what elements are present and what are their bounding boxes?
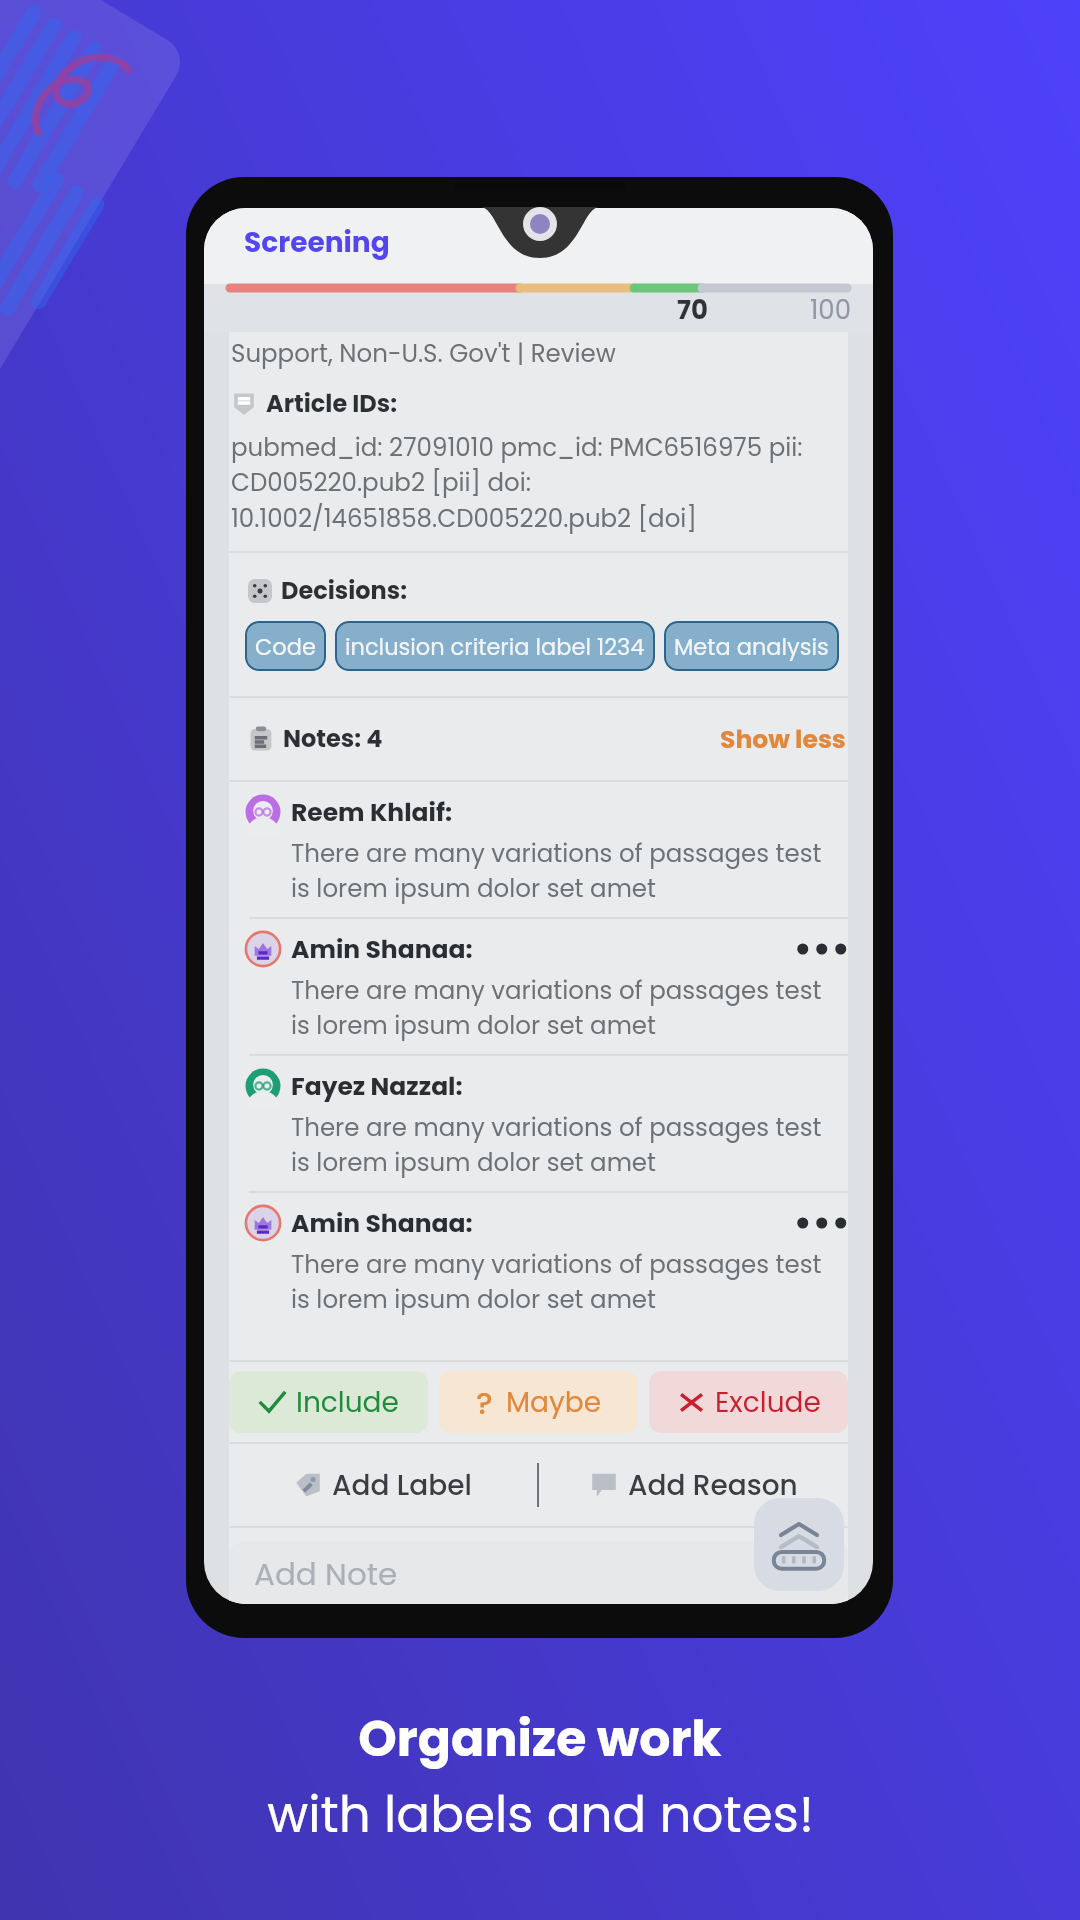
button[interactable]: More options	[796, 931, 848, 967]
staticText: Add Note	[254, 1552, 398, 1595]
staticText: There are many variations of passages te…	[291, 1110, 822, 1179]
button[interactable]: Meta analysis	[664, 621, 839, 671]
staticText: 70	[677, 292, 708, 328]
staticText: Add Label	[332, 1466, 472, 1505]
staticText: Include	[296, 1383, 399, 1422]
button[interactable]: Exclude	[649, 1371, 848, 1433]
staticText: There are many variations of passages te…	[291, 1247, 822, 1316]
staticText: Support, Non-U.S. Gov't | Review	[231, 336, 616, 370]
button[interactable]: inclusion criteria label 1234	[335, 621, 655, 671]
button[interactable]: Amin Shanaa:	[229, 919, 848, 1054]
staticText: Organize work	[358, 1705, 722, 1774]
button[interactable]: Reem Khlaif:	[229, 782, 848, 917]
staticText: Maybe	[506, 1383, 602, 1422]
staticText: Reem Khlaif:	[291, 795, 452, 830]
staticText: Fayez Nazzal:	[291, 1069, 463, 1104]
button[interactable]: More options	[796, 1205, 848, 1241]
button[interactable]: Add Label	[229, 1444, 537, 1526]
button[interactable]: Show keyboard	[754, 1498, 844, 1591]
button[interactable]: Include	[229, 1371, 428, 1433]
staticText: Meta analysis	[674, 631, 829, 662]
button[interactable]: Code	[245, 621, 326, 671]
staticText: Show less	[720, 722, 846, 757]
staticText: There are many variations of passages te…	[291, 973, 822, 1042]
button[interactable]: Notes: 4	[229, 698, 848, 780]
staticText: Amin Shanaa:	[291, 1206, 473, 1241]
button[interactable]: Amin Shanaa:	[229, 1193, 848, 1328]
staticText: Amin Shanaa:	[291, 932, 473, 967]
staticText: Exclude	[715, 1383, 821, 1422]
button[interactable]: Add Reason	[539, 1444, 848, 1526]
staticText: Code	[255, 631, 316, 662]
staticText: 100	[810, 292, 851, 328]
staticText: ?	[476, 1381, 493, 1424]
staticText: pubmed_id: 27091010 pmc_id: PMC6516975 p…	[231, 430, 803, 536]
button[interactable]: ?	[439, 1371, 638, 1433]
staticText: with labels and notes!	[267, 1780, 814, 1850]
staticText: Notes: 4	[283, 722, 383, 756]
button[interactable]: Add Note	[229, 1542, 848, 1604]
button[interactable]: Screening	[244, 223, 390, 262]
staticText: Article IDs:	[266, 387, 397, 421]
staticText: There are many variations of passages te…	[291, 836, 822, 905]
button[interactable]: Fayez Nazzal:	[229, 1056, 848, 1191]
staticText: Decisions:	[281, 574, 407, 608]
staticText: inclusion criteria label 1234	[345, 631, 645, 662]
staticText: Add Reason	[628, 1466, 798, 1505]
